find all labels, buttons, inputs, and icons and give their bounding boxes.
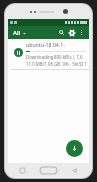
staticText: All: [13, 29, 21, 37]
button[interactable]: Settings: [67, 28, 76, 37]
staticText: Downloading: [26, 54, 54, 60]
button[interactable]: Home: [40, 167, 57, 174]
staticText: 890 kB/s | 7.6 Bits: [54, 54, 86, 60]
button[interactable]: Search: [57, 28, 66, 37]
button[interactable]: Add download: [66, 140, 83, 157]
staticText: 17/42: [84, 61, 86, 67]
button[interactable]: Pause download: [14, 48, 23, 57]
button[interactable]: Recents: [20, 168, 25, 173]
button[interactable]: All: [12, 28, 27, 38]
staticText: 11.0 MB/1.95 GB 0% · 5in32: [26, 61, 84, 67]
button[interactable]: More options: [77, 28, 86, 37]
staticText: ubuntu-18.04.1-desktop-amd64.iso: [26, 41, 86, 48]
button[interactable]: Back: [72, 168, 77, 173]
button[interactable]: Pause download: [8, 39, 89, 70]
